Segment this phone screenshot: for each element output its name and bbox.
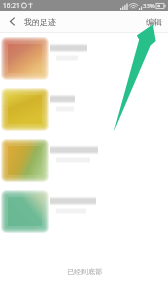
button[interactable] bbox=[0, 84, 168, 135]
button[interactable]: 编辑 bbox=[140, 11, 168, 32]
staticText: 编辑 bbox=[146, 17, 162, 27]
staticText: 16:21 bbox=[3, 1, 20, 10]
staticText: 33% bbox=[143, 2, 155, 10]
button[interactable] bbox=[0, 135, 168, 186]
button[interactable]: Back bbox=[0, 11, 24, 32]
button[interactable] bbox=[0, 33, 168, 84]
staticText: 我的足迹 bbox=[24, 17, 56, 27]
button[interactable] bbox=[0, 186, 168, 237]
staticText: 已经到底部 bbox=[67, 267, 102, 276]
